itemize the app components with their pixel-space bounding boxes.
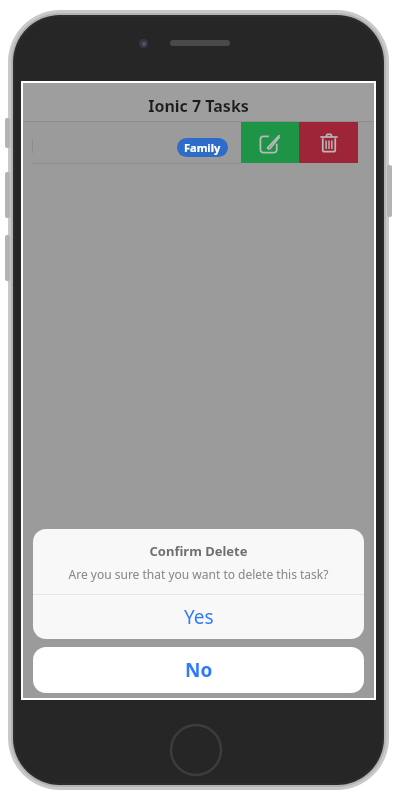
button[interactable]: Yes	[33, 595, 364, 639]
staticText: Yes	[184, 604, 214, 630]
button[interactable]: No	[33, 647, 364, 693]
button[interactable]: Delete task	[299, 122, 358, 163]
staticText: Are you sure that you want to delete thi…	[33, 566, 364, 582]
staticText: Ionic 7 Tasks	[148, 95, 249, 117]
staticText: Family	[184, 140, 221, 155]
button[interactable]: Family	[177, 138, 228, 157]
staticText: No	[185, 657, 213, 683]
staticText: Confirm Delete	[33, 542, 364, 560]
button[interactable]: Edit task	[241, 122, 299, 163]
